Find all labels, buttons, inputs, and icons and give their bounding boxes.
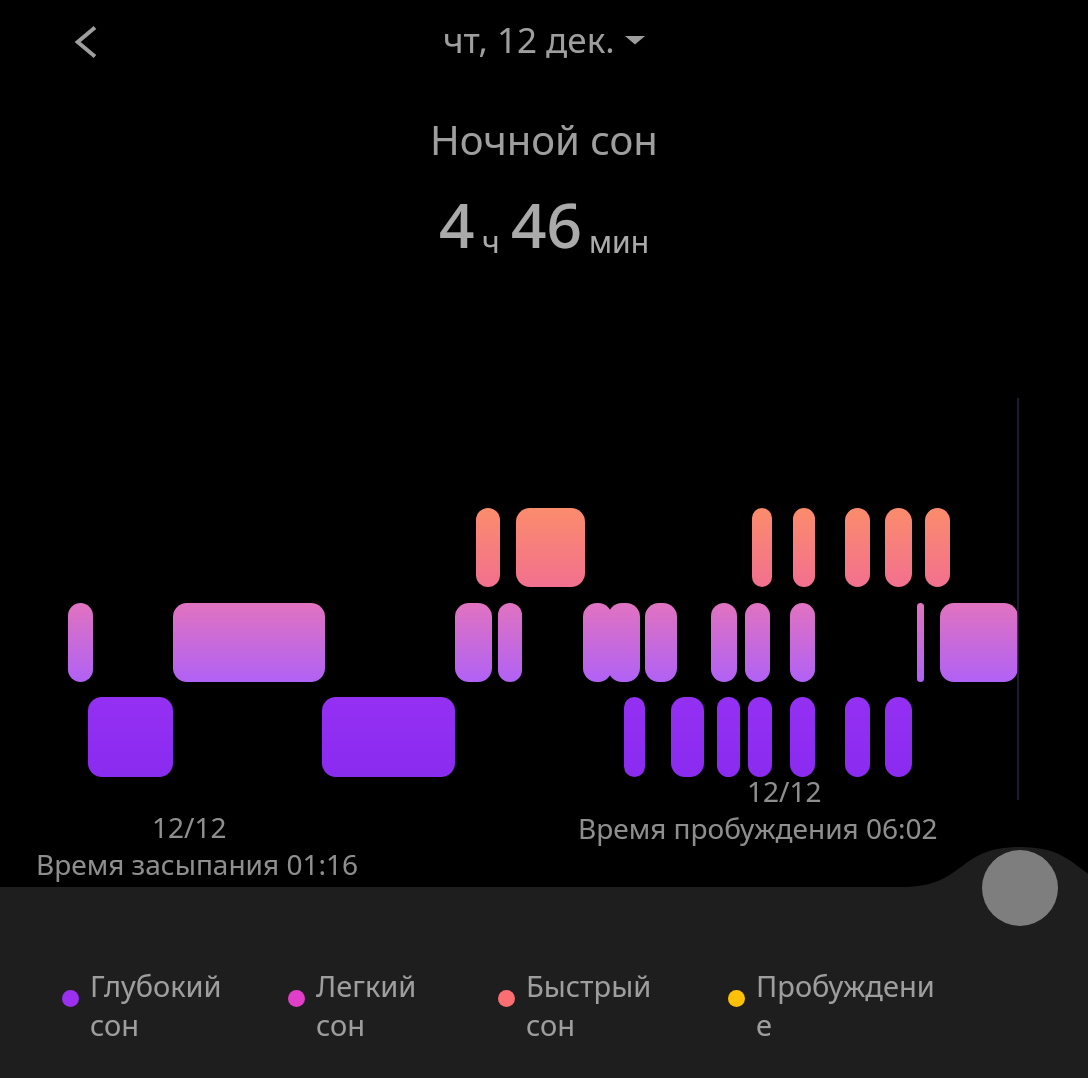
button[interactable]: Back	[46, 6, 118, 78]
staticText: сон	[90, 1005, 140, 1044]
button[interactable]: чт, 12 дек.	[150, 16, 938, 64]
staticText: ч	[482, 221, 500, 262]
staticText: 4	[439, 182, 475, 266]
button[interactable]: Быстрый	[498, 966, 728, 1044]
staticText: Быстрый	[526, 966, 652, 1005]
staticText: 12/12	[152, 808, 227, 846]
staticText: 12/12	[747, 772, 822, 810]
staticText: Ночной сон	[430, 112, 658, 166]
staticText: Время засыпания 01:16	[36, 845, 359, 883]
staticText: Время пробуждения 06:02	[578, 809, 938, 847]
staticText: мин	[589, 221, 650, 262]
staticText: сон	[316, 1005, 366, 1044]
button[interactable]: Add sleep record	[982, 850, 1058, 926]
staticText: Легкий	[316, 966, 417, 1005]
button[interactable]: Пробуждени	[728, 966, 948, 1044]
staticText: Пробуждени	[756, 966, 935, 1005]
button[interactable]: Глубокий	[62, 966, 288, 1044]
staticText: Глубокий	[90, 966, 222, 1005]
button[interactable]: Легкий	[288, 966, 498, 1044]
staticText: 46	[511, 182, 582, 266]
staticText: чт, 12 дек.	[443, 16, 615, 64]
staticText: сон	[526, 1005, 576, 1044]
staticText: е	[756, 1005, 772, 1044]
